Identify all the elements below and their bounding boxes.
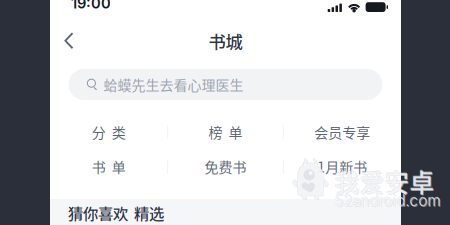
- staticText: 我爱安卓: [334, 163, 434, 199]
- button[interactable]: 会员专享: [284, 116, 401, 148]
- staticText: 免费书: [204, 156, 246, 177]
- staticText: 蛤蟆先生去看心理医生: [103, 74, 243, 95]
- button[interactable]: 书 单: [50, 150, 167, 182]
- staticText: 书城: [208, 28, 242, 54]
- staticText: 1月新书: [317, 156, 367, 177]
- staticText: 52android.com: [335, 191, 441, 210]
- button[interactable]: 1月新书: [284, 150, 401, 182]
- staticText: 我爱安卓: [335, 164, 435, 200]
- button[interactable]: Back: [54, 25, 86, 57]
- staticText: 52android.com: [334, 191, 440, 209]
- button[interactable]: 蛤蟆先生去看心理医生: [68, 69, 382, 100]
- button[interactable]: 免费书: [168, 150, 283, 182]
- staticText: 会员专享: [314, 122, 370, 142]
- staticText: 我爱安卓: [335, 164, 435, 199]
- button[interactable]: 分 类: [50, 116, 167, 148]
- staticText: 分 类: [92, 122, 126, 142]
- staticText: 猜你喜欢 精选: [68, 202, 164, 224]
- staticText: 书 单: [92, 156, 126, 177]
- button[interactable]: 榜 单: [168, 116, 283, 148]
- staticText: 榜 单: [208, 122, 242, 142]
- staticText: 19:00: [71, 0, 111, 12]
- staticText: 52android.com: [335, 192, 441, 211]
